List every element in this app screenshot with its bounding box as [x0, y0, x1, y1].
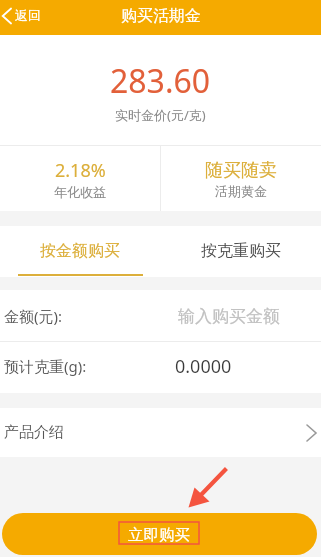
staticText: 实时金价(元/克): [115, 106, 206, 124]
button[interactable]: 立即购买: [2, 513, 317, 555]
staticText: 按金额购买: [40, 241, 120, 261]
staticText: 0.0000: [175, 354, 232, 379]
staticText: 返回: [15, 7, 41, 23]
other: 产品介绍: [306, 424, 317, 442]
staticText: 立即购买: [128, 525, 190, 545]
staticText: 购买活期金: [121, 6, 201, 26]
button[interactable]: 按金额购买: [0, 226, 160, 277]
button[interactable]: 金额(元):: [0, 290, 321, 341]
button[interactable]: 按克重购买: [160, 226, 321, 277]
staticText: 283.60: [110, 59, 211, 103]
staticText: 随买随卖: [205, 159, 277, 182]
staticText: 按克重购买: [201, 241, 281, 261]
staticText: 产品介绍: [4, 423, 64, 442]
button[interactable]: 随买随卖: [161, 146, 321, 211]
button[interactable]: 产品介绍: [0, 408, 321, 457]
staticText: 年化收益: [54, 184, 106, 200]
staticText: 预计克重(g):: [4, 356, 87, 376]
staticText: 输入购买金额: [178, 306, 280, 327]
staticText: 金额(元):: [4, 306, 63, 326]
button[interactable]: 返回: [0, 5, 49, 31]
staticText: 活期黄金: [215, 183, 267, 199]
staticText: 2.18%: [55, 158, 106, 183]
button[interactable]: 2.18%: [0, 146, 160, 211]
